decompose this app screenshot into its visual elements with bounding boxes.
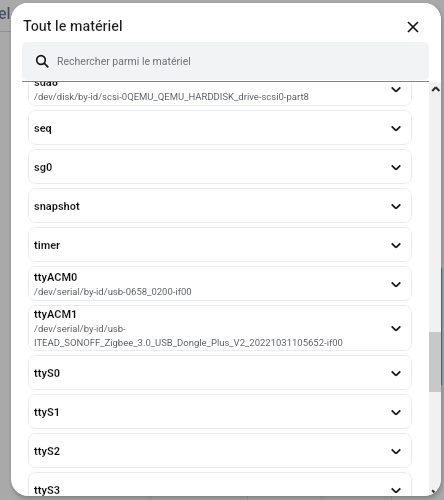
staticText: sda8 xyxy=(34,76,59,89)
staticText: el xyxy=(0,4,11,23)
staticText: ITEAD_SONOFF_Zigbee_3.0_USB_Dongle_Plus_… xyxy=(34,337,343,348)
staticText: ttyS3 xyxy=(34,484,61,496)
button[interactable]: Rechercher parmi le matériel xyxy=(22,42,429,80)
button[interactable]: ttyS2 xyxy=(28,433,412,468)
button[interactable]: ttyACM0 xyxy=(28,266,412,301)
button[interactable]: sda8 xyxy=(28,71,412,106)
staticText: /dev/serial/by-id/usb- xyxy=(34,323,126,334)
staticText: ttyACM1 xyxy=(34,308,78,321)
staticText: ttyS0 xyxy=(34,367,61,380)
staticText: ttyS2 xyxy=(34,445,61,458)
staticText: sg0 xyxy=(34,161,53,174)
button[interactable]: ttyS3 xyxy=(28,472,412,496)
button[interactable]: snapshot xyxy=(28,188,412,223)
staticText: ttyS1 xyxy=(34,406,61,419)
button[interactable]: ttyACM1 xyxy=(28,305,412,351)
button[interactable]: ttyS0 xyxy=(28,355,412,390)
button[interactable]: ttyS1 xyxy=(28,394,412,429)
staticText: Tout le matériel xyxy=(23,18,123,35)
button[interactable]: seq xyxy=(28,110,412,145)
staticText: ttyACM0 xyxy=(34,271,78,284)
button[interactable]: timer xyxy=(28,227,412,262)
staticText: /dev/disk/by-id/scsi-0QEMU_QEMU_HARDDISK… xyxy=(34,91,309,102)
staticText: /dev/serial/by-id/usb-0658_0200-if00 xyxy=(34,286,192,297)
staticText: Rechercher parmi le matériel xyxy=(57,55,191,67)
button[interactable]: sg0 xyxy=(28,149,412,184)
other: Faire défiler xyxy=(429,82,441,496)
button[interactable]: Fermer xyxy=(396,10,429,43)
staticText: timer xyxy=(34,239,61,252)
staticText: snapshot xyxy=(34,200,80,213)
staticText: seq xyxy=(34,122,52,135)
